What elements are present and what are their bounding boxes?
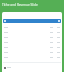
- button[interactable]: [2, 25, 62, 30]
- staticText: Tithe and Revenue Slide: [2, 3, 38, 7]
- button[interactable]: [2, 30, 62, 35]
- button[interactable]: [3, 19, 61, 23]
- button[interactable]: [2, 65, 62, 70]
- button[interactable]: [2, 45, 62, 50]
- button[interactable]: [2, 40, 62, 45]
- button[interactable]: [2, 55, 62, 60]
- button[interactable]: [2, 50, 62, 55]
- button[interactable]: [2, 35, 62, 40]
